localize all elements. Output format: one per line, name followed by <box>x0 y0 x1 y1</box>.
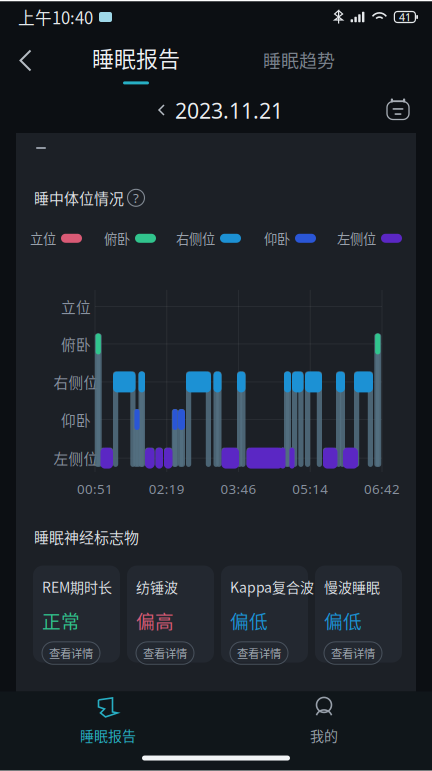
staticText: 41 <box>399 10 411 24</box>
staticText: 睡中体位情况 <box>34 187 124 209</box>
button[interactable]: 睡眠报告 <box>0 697 216 745</box>
staticText: 左侧位 <box>337 229 376 248</box>
staticText: 00:51 <box>77 480 113 498</box>
staticText: 06:42 <box>364 480 400 498</box>
staticText: 查看详情 <box>331 645 375 661</box>
staticText: 上午10:40 <box>18 5 93 29</box>
staticText: 睡眠趋势 <box>263 47 335 73</box>
staticText: REM期时长 <box>42 577 112 597</box>
button[interactable]: 查看详情 <box>42 642 100 664</box>
staticText: 慢波睡眠 <box>324 577 380 597</box>
staticText: 02:19 <box>149 480 185 498</box>
staticText: 立位 <box>61 296 91 317</box>
staticText: 右侧位 <box>176 229 215 248</box>
staticText: 我的 <box>310 725 338 745</box>
staticText: 睡眠报告 <box>92 42 180 73</box>
button[interactable]: Back <box>0 33 52 89</box>
button[interactable]: 我的 <box>216 697 432 745</box>
staticText: 立位 <box>30 229 56 248</box>
staticText: 右侧位 <box>53 371 98 392</box>
staticText: 俯卧 <box>104 229 130 248</box>
staticText: 纺锤波 <box>136 577 178 597</box>
button[interactable]: Previous day <box>149 95 175 125</box>
staticText: 睡眠神经标志物 <box>34 526 139 547</box>
button[interactable]: 查看详情 <box>230 642 288 664</box>
staticText: 仰卧 <box>264 229 290 248</box>
button[interactable]: Help <box>126 188 146 208</box>
staticText: 查看详情 <box>49 645 93 661</box>
button[interactable]: 睡眠趋势 <box>259 33 339 87</box>
staticText: 仰卧 <box>61 409 91 430</box>
staticText: Kappa复合波 <box>230 577 314 597</box>
staticText: 左侧位 <box>53 447 98 469</box>
staticText: 俯卧 <box>61 333 91 354</box>
button[interactable]: 睡眠报告 <box>88 33 184 87</box>
staticText: 查看详情 <box>143 645 187 661</box>
staticText: 偏低 <box>230 607 268 634</box>
staticText: 查看详情 <box>237 645 281 661</box>
button[interactable]: 查看详情 <box>136 642 194 664</box>
staticText: 睡眠报告 <box>80 725 136 745</box>
staticText: ? <box>133 189 139 207</box>
staticText: 03:46 <box>220 480 256 498</box>
staticText: 2023.11.21 <box>175 96 283 125</box>
staticText: 正常 <box>42 607 80 634</box>
staticText: 偏低 <box>324 607 362 634</box>
button[interactable]: Calendar <box>378 93 418 127</box>
staticText: 05:14 <box>292 480 328 498</box>
button[interactable]: 查看详情 <box>324 642 382 664</box>
staticText: 偏高 <box>136 607 174 634</box>
